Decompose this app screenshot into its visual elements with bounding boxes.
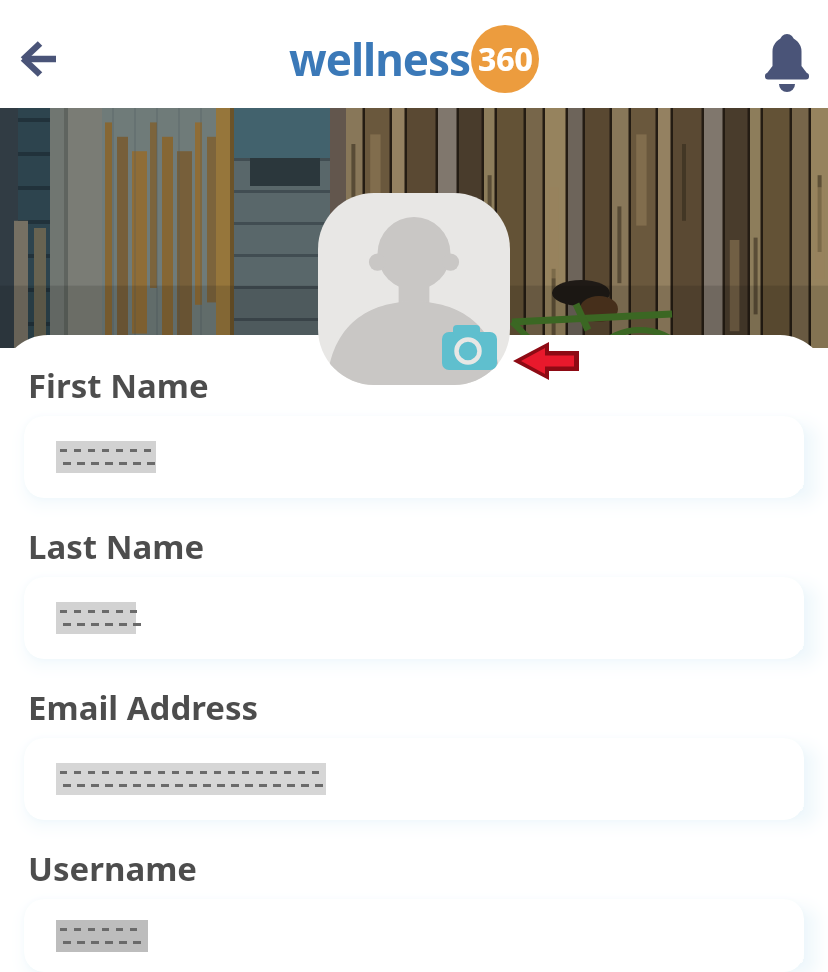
staticText: 360 [478,37,533,81]
staticText: Email Address [28,685,259,730]
button[interactable] [12,31,68,87]
button[interactable] [24,738,804,820]
button[interactable] [24,899,804,972]
button[interactable] [24,577,804,659]
button[interactable] [24,416,804,498]
button[interactable] [442,325,498,372]
button[interactable] [318,193,510,385]
staticText: Username [28,846,198,891]
staticText: wellness [289,29,471,89]
staticText: First Name [28,363,209,408]
button[interactable]: wellness [289,25,539,93]
staticText: Last Name [28,524,205,569]
button[interactable] [760,32,814,86]
